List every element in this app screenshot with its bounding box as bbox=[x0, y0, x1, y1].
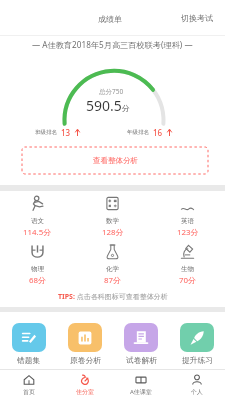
staticText: 原卷分析 bbox=[70, 356, 101, 366]
staticText: 错题集 bbox=[17, 356, 41, 366]
staticText: 佳分室 bbox=[76, 388, 94, 396]
staticText: 114.5分 bbox=[23, 227, 52, 238]
staticText: 87分 bbox=[104, 275, 121, 286]
staticText: 68分 bbox=[29, 275, 46, 286]
staticText: 总分750 bbox=[99, 87, 124, 96]
button[interactable]: 英语 bbox=[150, 195, 225, 238]
button[interactable]: 错题集 bbox=[0, 312, 57, 366]
staticText: 物理 bbox=[31, 265, 44, 273]
button[interactable]: 试卷解析 bbox=[113, 312, 169, 366]
button[interactable]: 佳分室 bbox=[57, 370, 113, 400]
staticText: 个人 bbox=[191, 388, 203, 396]
button[interactable]: A佳课堂 bbox=[113, 370, 169, 400]
button[interactable]: 语文 bbox=[0, 195, 75, 238]
staticText: 查看整体分析 bbox=[93, 156, 138, 165]
staticText: 年级排名 bbox=[127, 129, 149, 136]
staticText: 英语 bbox=[181, 217, 194, 225]
button[interactable]: 原卷分析 bbox=[57, 312, 113, 366]
staticText: — A佳教育2018年5月高三百校联考(理科) — bbox=[32, 39, 193, 50]
staticText: 化学 bbox=[106, 265, 119, 273]
staticText: 16 bbox=[153, 127, 163, 138]
staticText: 13 bbox=[61, 127, 71, 138]
staticText: 切换考试 bbox=[181, 13, 213, 23]
staticText: 成绩单 bbox=[98, 14, 122, 24]
button[interactable]: 提升练习 bbox=[169, 312, 225, 366]
staticText: 试卷解析 bbox=[126, 356, 157, 366]
staticText: 123分 bbox=[177, 227, 199, 238]
staticText: 提升练习 bbox=[182, 356, 213, 366]
button[interactable]: 化学 bbox=[75, 243, 150, 286]
staticText: TIPS: 点击各科图标可查看整体分析 bbox=[58, 292, 168, 302]
staticText: 班级排名 bbox=[35, 129, 57, 136]
staticText: 数学 bbox=[106, 217, 119, 225]
button[interactable]: 查看整体分析 bbox=[22, 147, 208, 174]
staticText: 128分 bbox=[102, 227, 124, 238]
staticText: 70分 bbox=[179, 275, 196, 286]
staticText: 生物 bbox=[181, 265, 194, 273]
staticText: 首页 bbox=[23, 388, 35, 396]
staticText: 590.5分 bbox=[86, 96, 130, 115]
button[interactable]: 切换考试 bbox=[171, 4, 225, 32]
staticText: 语文 bbox=[31, 217, 44, 225]
button[interactable]: 首页 bbox=[0, 370, 57, 400]
button[interactable]: 物理 bbox=[0, 243, 75, 286]
button[interactable]: 个人 bbox=[169, 370, 225, 400]
staticText: A佳课堂 bbox=[130, 388, 152, 396]
button[interactable]: 数学 bbox=[75, 195, 150, 238]
button[interactable]: 生物 bbox=[150, 243, 225, 286]
